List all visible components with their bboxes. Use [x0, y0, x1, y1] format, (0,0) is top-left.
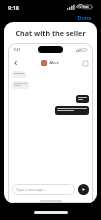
button[interactable]: Back: [12, 59, 20, 67]
button[interactable]: [12, 81, 29, 89]
button[interactable]: [12, 71, 26, 78]
button[interactable]: [76, 95, 89, 103]
button[interactable]: Type a message...: [12, 184, 75, 195]
staticText: 9:41: [13, 47, 21, 52]
staticText: 9:18: [8, 4, 19, 11]
button[interactable]: Send: [78, 184, 89, 195]
staticText: Chat with the seller: [15, 28, 86, 38]
staticText: Type a message...: [16, 187, 46, 192]
button[interactable]: Done: [75, 13, 94, 22]
button[interactable]: [55, 106, 89, 115]
button[interactable]: More options: [81, 59, 89, 67]
staticText: Alice: [49, 60, 59, 66]
staticText: Done: [77, 14, 92, 21]
